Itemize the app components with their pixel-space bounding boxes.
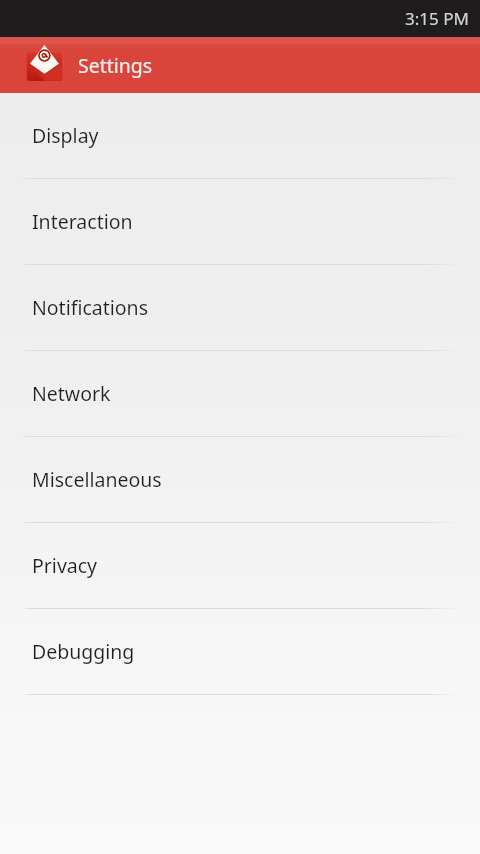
staticText: Display <box>32 122 99 149</box>
button[interactable]: Display <box>0 93 480 178</box>
button[interactable]: Notifications <box>0 265 480 350</box>
staticText: Debugging <box>32 638 135 665</box>
staticText: Miscellaneous <box>32 466 162 493</box>
button[interactable]: Privacy <box>0 523 480 608</box>
button[interactable]: Network <box>0 351 480 436</box>
button[interactable]: Mail app icon <box>23 44 65 86</box>
staticText: 3:15 PM <box>405 7 469 30</box>
staticText: Network <box>32 380 111 407</box>
button[interactable]: Interaction <box>0 179 480 264</box>
button[interactable]: Debugging <box>0 609 480 694</box>
staticText: Settings <box>78 52 153 79</box>
button[interactable]: Miscellaneous <box>0 437 480 522</box>
staticText: Privacy <box>32 552 98 579</box>
staticText: Notifications <box>32 294 148 321</box>
staticText: Interaction <box>32 208 133 235</box>
